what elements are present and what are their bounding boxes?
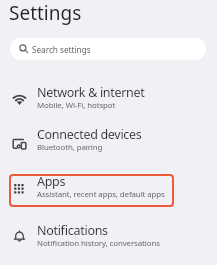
button[interactable]: Connected devices — [0, 126, 217, 168]
staticText: Connected devices — [37, 126, 142, 143]
staticText: Apps — [37, 173, 66, 190]
staticText: Settings — [9, 0, 82, 26]
button[interactable]: Apps — [0, 173, 217, 215]
button[interactable]: Network & internet — [0, 84, 217, 126]
staticText: Mobile, Wi-Fi, hotspot — [37, 100, 116, 111]
staticText: Search settings — [32, 44, 91, 55]
staticText: Notification history, conversations — [37, 238, 160, 249]
staticText: Assistant, recent apps, default apps — [37, 189, 165, 200]
button[interactable]: Search settings — [10, 38, 206, 60]
staticText: Bluetooth, pairing — [37, 142, 103, 153]
staticText: Notifications — [37, 222, 108, 239]
button[interactable]: Notifications — [0, 222, 217, 264]
staticText: Network & internet — [37, 84, 145, 101]
